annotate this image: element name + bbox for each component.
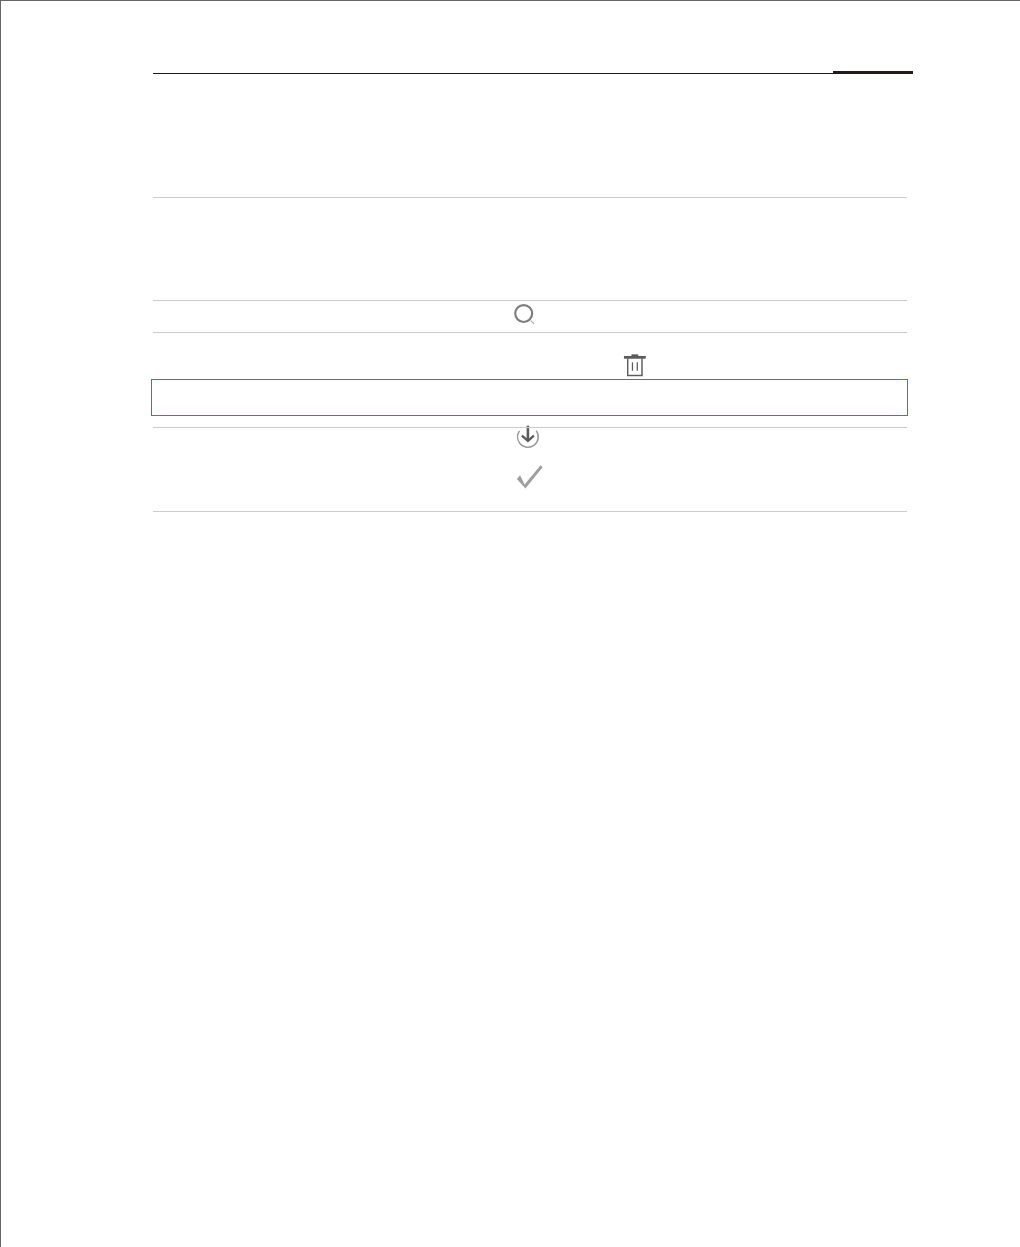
button[interactable]: Delete [620,351,651,380]
button[interactable]: Text field [151,379,908,416]
button[interactable]: Download [514,424,544,454]
button[interactable]: Confirm [515,464,545,490]
button[interactable]: Search [506,299,542,331]
